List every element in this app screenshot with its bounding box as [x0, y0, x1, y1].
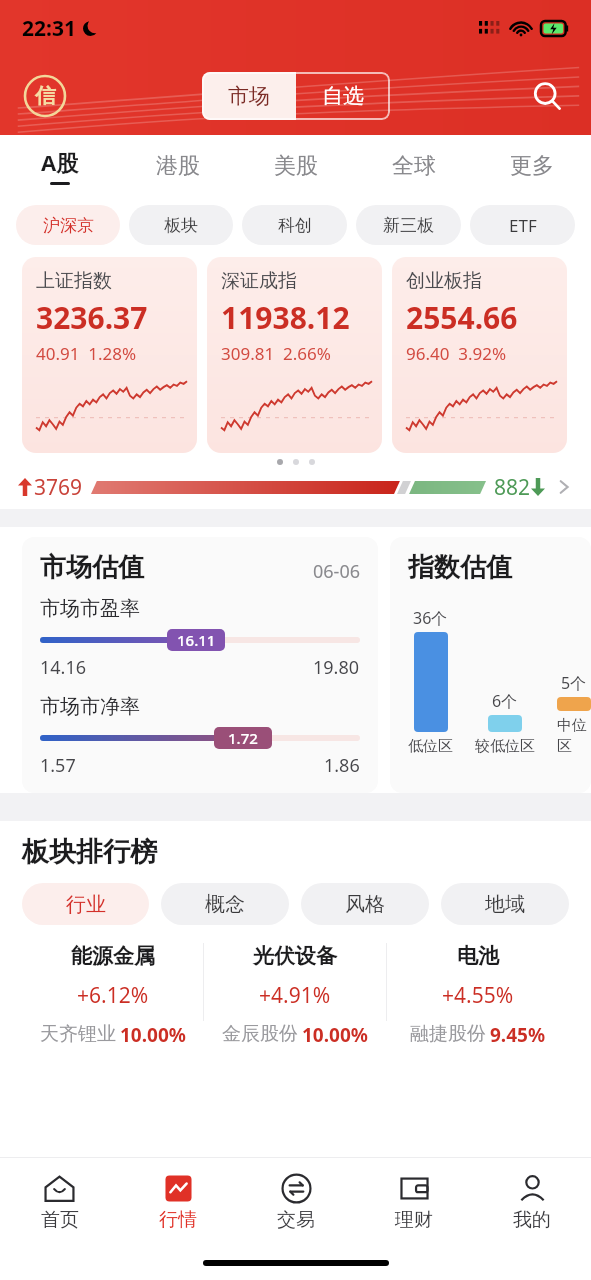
staticText: 上证指数 — [36, 269, 112, 293]
staticText: 全球 — [392, 152, 436, 180]
staticText: 市场市盈率 — [40, 596, 140, 621]
staticText: 市场估值 — [40, 551, 144, 584]
staticText: 14.16 — [40, 655, 87, 680]
staticText: 22:31 — [22, 14, 76, 43]
button[interactable]: 市场估值 — [22, 537, 378, 793]
staticText: 指数估值 — [408, 551, 512, 584]
button[interactable]: 美股 — [237, 135, 355, 197]
button[interactable]: A股 — [0, 135, 119, 197]
staticText: 市场市净率 — [40, 694, 140, 719]
staticText: 10.00% — [302, 1022, 368, 1043]
staticText: 19.80 — [313, 655, 360, 680]
staticText: 3769 — [34, 473, 83, 502]
staticText: 3236.37 — [36, 297, 148, 338]
button[interactable]: 更多 — [473, 135, 591, 197]
staticText: 96.40 3.92% — [406, 342, 507, 365]
staticText: 融捷股份 — [410, 1022, 486, 1043]
staticText: 06-06 — [313, 559, 360, 584]
staticText: 交易 — [277, 1208, 315, 1232]
button[interactable]: 风格 — [301, 883, 429, 925]
staticText: 沪深京 — [43, 215, 94, 236]
button[interactable]: 创业板指 — [392, 257, 567, 453]
button[interactable]: 行情 — [119, 1158, 237, 1246]
button[interactable]: 电池 — [387, 943, 569, 1043]
button[interactable]: 概念 — [161, 883, 289, 925]
staticText: 36个 — [413, 607, 448, 629]
button[interactable]: 交易 — [237, 1158, 355, 1246]
button[interactable]: 地域 — [441, 883, 569, 925]
staticText: 新三板 — [383, 215, 434, 236]
staticText: 信 — [35, 83, 56, 109]
button[interactable]: 我的 — [473, 1158, 591, 1246]
button[interactable]: 能源金属 — [22, 943, 203, 1043]
button[interactable]: Search — [523, 72, 571, 120]
staticText: 地域 — [485, 892, 525, 917]
staticText: 行情 — [159, 1208, 197, 1232]
staticText: 行业 — [66, 892, 106, 917]
staticText: 882 — [494, 473, 531, 502]
staticText: 11938.12 — [221, 297, 350, 338]
staticText: 港股 — [156, 152, 200, 180]
button[interactable]: 深证成指 — [207, 257, 382, 453]
button[interactable]: 指数估值 — [390, 537, 591, 793]
staticText: 板块 — [164, 215, 198, 236]
staticText: 自选 — [322, 83, 364, 109]
button[interactable]: 理财 — [355, 1158, 473, 1246]
staticText: 金辰股份 — [222, 1022, 298, 1043]
staticText: 中位区 — [557, 716, 591, 756]
staticText: 1.57 — [40, 753, 76, 778]
staticText: 1.72 — [228, 728, 258, 748]
button[interactable]: 首页 — [0, 1158, 119, 1246]
button[interactable]: 新三板 — [356, 205, 461, 245]
staticText: 低位区 — [408, 737, 453, 756]
other: Logo — [20, 71, 70, 121]
button[interactable]: 沪深京 — [16, 205, 120, 245]
staticText: ETF — [509, 214, 537, 237]
staticText: 板块排行榜 — [22, 835, 157, 869]
staticText: 市场 — [228, 83, 270, 109]
staticText: 9.45% — [490, 1022, 546, 1043]
staticText: +6.12% — [77, 981, 149, 1010]
staticText: 概念 — [205, 892, 245, 917]
staticText: 光伏设备 — [253, 943, 337, 969]
staticText: +4.55% — [442, 981, 514, 1010]
staticText: 科创 — [278, 215, 312, 236]
button[interactable]: 自选 — [296, 72, 390, 120]
staticText: 2554.66 — [406, 297, 518, 338]
staticText: 40.91 1.28% — [36, 342, 137, 365]
staticText: 10.00% — [120, 1022, 186, 1043]
button[interactable]: 3769 — [18, 465, 573, 509]
staticText: 美股 — [274, 152, 318, 180]
button[interactable]: ETF — [470, 205, 575, 245]
staticText: 首页 — [41, 1208, 79, 1232]
staticText: 风格 — [345, 892, 385, 917]
button[interactable]: 科创 — [242, 205, 347, 245]
staticText: 理财 — [395, 1208, 433, 1232]
staticText: 电池 — [457, 943, 499, 969]
staticText: 5个 — [561, 672, 587, 694]
staticText: 更多 — [510, 152, 554, 180]
staticText: 能源金属 — [71, 943, 155, 969]
staticText: 天齐锂业 — [40, 1022, 116, 1043]
staticText: 创业板指 — [406, 269, 482, 293]
staticText: 1.86 — [324, 753, 360, 778]
staticText: 我的 — [513, 1208, 551, 1232]
staticText: A股 — [41, 147, 79, 177]
button[interactable]: 光伏设备 — [204, 943, 386, 1043]
button[interactable]: 港股 — [119, 135, 237, 197]
button[interactable]: 板块 — [129, 205, 233, 245]
button[interactable]: 市场 — [202, 72, 296, 120]
button[interactable]: 行业 — [22, 883, 149, 925]
staticText: 深证成指 — [221, 269, 297, 293]
button[interactable]: 全球 — [355, 135, 473, 197]
staticText: 309.81 2.66% — [221, 342, 331, 365]
staticText: 16.11 — [177, 630, 216, 650]
staticText: +4.91% — [259, 981, 331, 1010]
staticText: 较低位区 — [475, 737, 535, 756]
staticText: 6个 — [492, 690, 518, 712]
button[interactable]: 上证指数 — [22, 257, 197, 453]
